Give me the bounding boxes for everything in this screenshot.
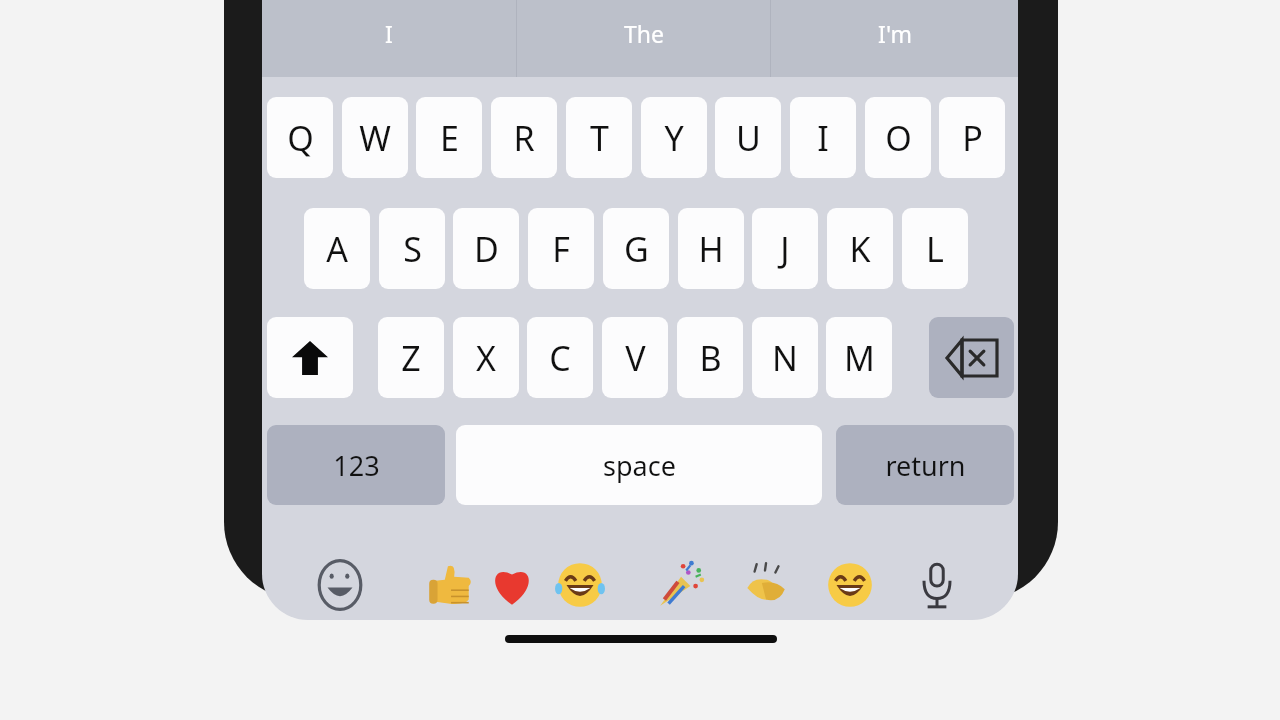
staticText: O bbox=[885, 115, 912, 161]
button[interactable]: Emoji keyboard bbox=[314, 559, 366, 611]
staticText: Q bbox=[287, 115, 314, 161]
button[interactable]: F bbox=[528, 208, 594, 289]
button[interactable]: C bbox=[527, 317, 593, 398]
staticText: I bbox=[817, 115, 829, 161]
button[interactable]: A bbox=[304, 208, 370, 289]
button[interactable]: D bbox=[453, 208, 519, 289]
button[interactable]: B bbox=[677, 317, 743, 398]
staticText: space bbox=[603, 447, 676, 484]
button[interactable]: Z bbox=[378, 317, 444, 398]
button[interactable]: Laughing bbox=[554, 559, 606, 611]
staticText: L bbox=[926, 226, 944, 272]
staticText: M bbox=[844, 335, 875, 381]
staticText: R bbox=[513, 115, 535, 161]
button[interactable]: The bbox=[517, 0, 770, 77]
button[interactable]: space bbox=[456, 425, 822, 505]
staticText: S bbox=[403, 226, 422, 272]
staticText: return bbox=[885, 447, 966, 484]
button[interactable]: H bbox=[678, 208, 744, 289]
button[interactable]: G bbox=[603, 208, 669, 289]
button[interactable]: E bbox=[416, 97, 482, 178]
staticText: G bbox=[624, 226, 649, 272]
button[interactable]: Thumbs up bbox=[424, 559, 476, 611]
button[interactable]: V bbox=[602, 317, 668, 398]
button[interactable]: M bbox=[826, 317, 892, 398]
staticText: D bbox=[474, 226, 499, 272]
staticText: X bbox=[476, 335, 496, 381]
staticText: I bbox=[385, 18, 393, 49]
button[interactable]: Backspace bbox=[929, 317, 1014, 398]
staticText: F bbox=[552, 226, 570, 272]
staticText: B bbox=[699, 335, 722, 381]
staticText: U bbox=[736, 115, 761, 161]
staticText: W bbox=[359, 115, 391, 161]
button[interactable]: N bbox=[752, 317, 818, 398]
button[interactable]: K bbox=[827, 208, 893, 289]
button[interactable]: W bbox=[342, 97, 408, 178]
staticText: Z bbox=[401, 335, 421, 381]
button[interactable]: Grin bbox=[824, 559, 876, 611]
button[interactable]: Y bbox=[641, 97, 707, 178]
button[interactable]: Party bbox=[654, 559, 706, 611]
button[interactable]: return bbox=[836, 425, 1014, 505]
button[interactable]: Dictation bbox=[911, 559, 963, 611]
staticText: 123 bbox=[333, 447, 380, 484]
button[interactable]: J bbox=[752, 208, 818, 289]
button[interactable]: I bbox=[262, 0, 516, 77]
staticText: P bbox=[962, 115, 983, 161]
staticText: N bbox=[772, 335, 798, 381]
button[interactable]: X bbox=[453, 317, 519, 398]
staticText: C bbox=[549, 335, 571, 381]
button[interactable]: Q bbox=[267, 97, 333, 178]
button[interactable]: S bbox=[379, 208, 445, 289]
staticText: K bbox=[849, 226, 871, 272]
button[interactable]: Heart bbox=[486, 559, 538, 611]
staticText: J bbox=[780, 226, 790, 272]
staticText: A bbox=[326, 226, 348, 272]
staticText: The bbox=[624, 18, 664, 49]
staticText: V bbox=[625, 335, 646, 381]
button[interactable]: I bbox=[790, 97, 856, 178]
button[interactable]: P bbox=[939, 97, 1005, 178]
staticText: T bbox=[590, 115, 609, 161]
button[interactable]: Clap bbox=[739, 559, 791, 611]
button[interactable]: I'm bbox=[771, 0, 1018, 77]
staticText: I'm bbox=[878, 18, 912, 49]
button[interactable]: L bbox=[902, 208, 968, 289]
button[interactable]: U bbox=[715, 97, 781, 178]
button[interactable]: O bbox=[865, 97, 931, 178]
staticText: E bbox=[440, 115, 459, 161]
button[interactable]: R bbox=[491, 97, 557, 178]
button[interactable]: 123 bbox=[267, 425, 445, 505]
staticText: Y bbox=[664, 115, 684, 161]
button[interactable]: Shift bbox=[267, 317, 353, 398]
staticText: H bbox=[698, 226, 724, 272]
button[interactable]: T bbox=[566, 97, 632, 178]
